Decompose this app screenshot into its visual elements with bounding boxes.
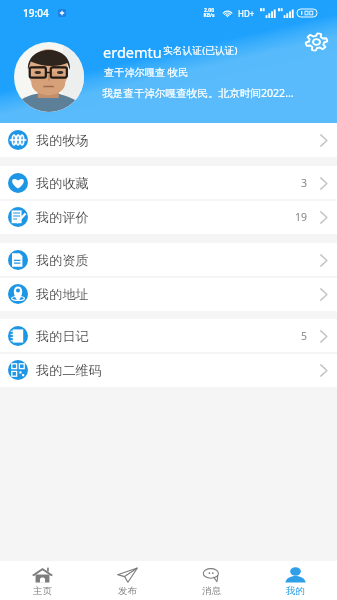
staticText: 我的评价 [36,209,89,226]
button[interactable]: 我的二维码 [0,353,337,387]
button[interactable]: 我的地址 [0,277,337,311]
staticText: 消息 [202,585,221,597]
button[interactable]: 我的 [253,561,337,600]
staticText: 我的日记 [36,328,89,345]
button[interactable]: 我的收藏 [0,166,337,200]
staticText: 2.00 KB/s [203,7,215,19]
staticText: HD+ [238,8,255,19]
button[interactable]: 我的资质 [0,243,337,277]
staticText: 我的牧场 [36,132,89,149]
staticText: 我的收藏 [36,175,89,192]
staticText: 19:04 [23,6,49,20]
staticText: 我的地址 [36,286,89,303]
button[interactable]: 我的日记 [0,319,337,353]
staticText: 查干淖尔嘎查 牧民 [104,65,189,79]
button[interactable]: 设置 [303,30,330,54]
staticText: 实名认证(已认证) [163,44,238,57]
button[interactable]: 消息 [169,561,253,600]
staticText: 3 [301,176,308,190]
button[interactable]: 我的评价 [0,200,337,234]
staticText: erdemtu [103,42,162,62]
staticText: 我是查干淖尔嘎查牧民。北京时间2022… [102,86,294,100]
staticText: 主页 [33,585,52,597]
staticText: 19 [295,210,308,224]
staticText: 我的二维码 [36,362,102,379]
staticText: 我的资质 [36,252,89,269]
button[interactable]: 发布 [85,561,169,600]
staticText: 5 [301,329,308,343]
button[interactable]: 我的牧场 [0,123,337,157]
button[interactable]: 主页 [0,561,85,600]
staticText: 我的 [286,585,305,597]
staticText: 发布 [118,585,137,597]
